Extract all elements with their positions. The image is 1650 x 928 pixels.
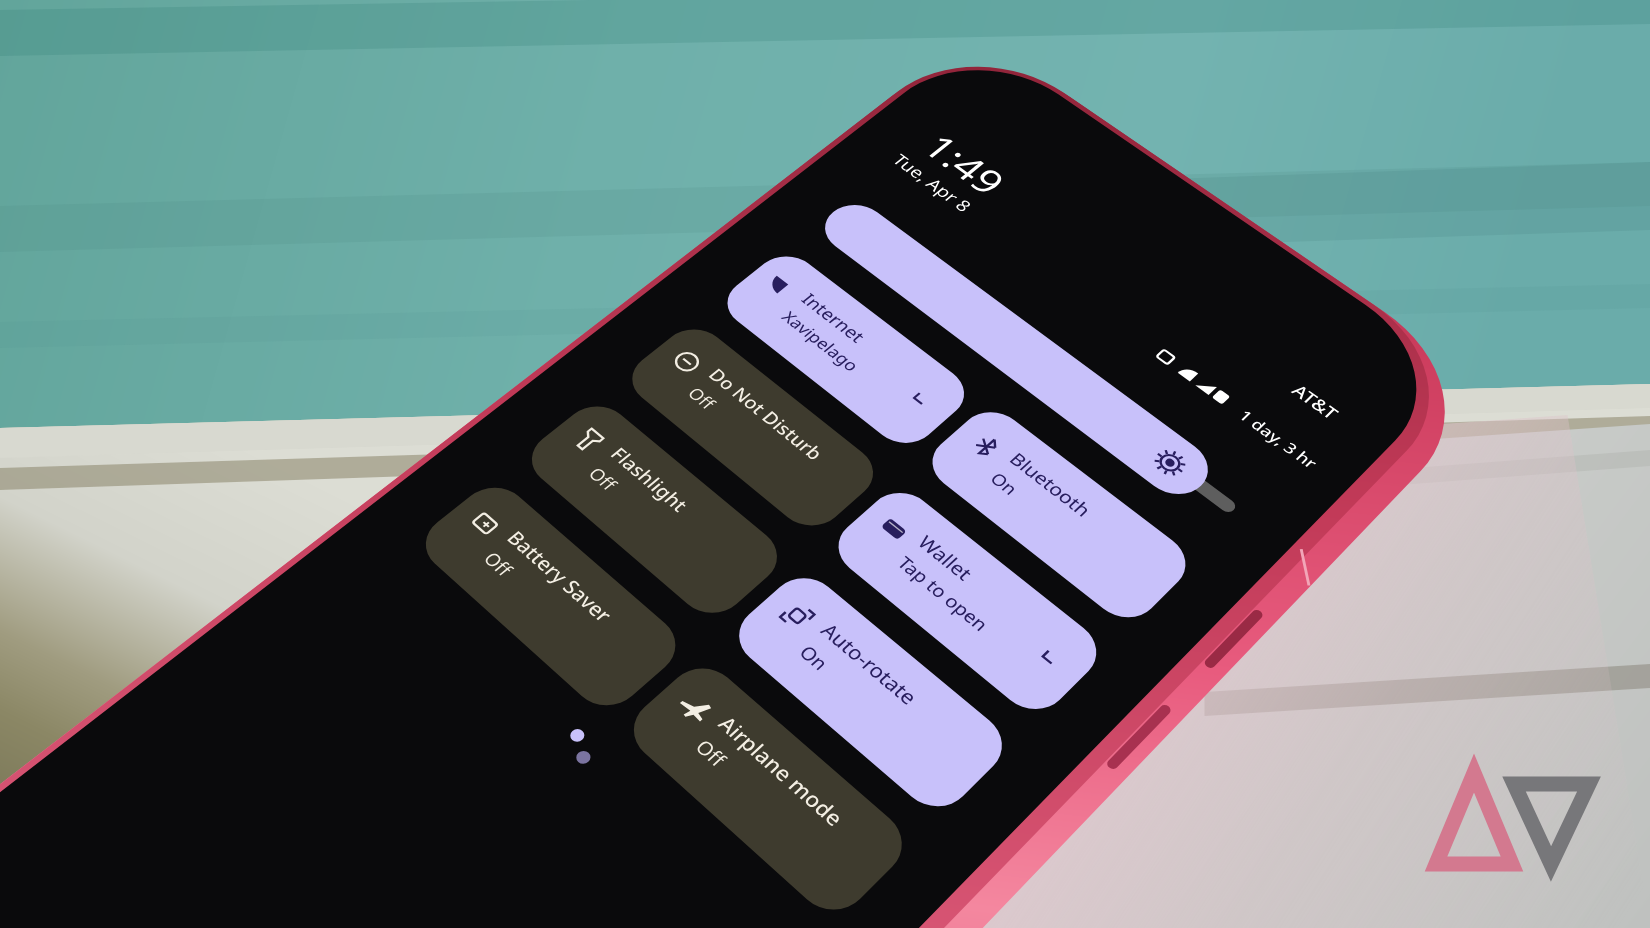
button[interactable]: Brightness bbox=[820, 200, 1220, 320]
